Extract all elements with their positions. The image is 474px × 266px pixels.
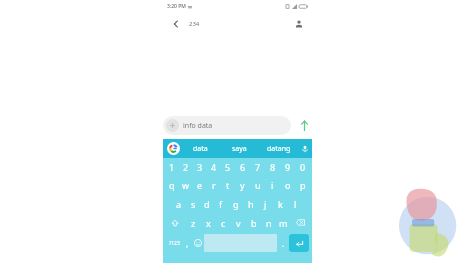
staticText: a xyxy=(176,198,182,210)
button[interactable]: l xyxy=(288,194,303,213)
button[interactable]: Add attachment xyxy=(166,119,179,132)
button[interactable]: . xyxy=(277,234,289,252)
button[interactable]: ?123 xyxy=(166,234,182,252)
button[interactable]: 7 xyxy=(250,159,265,175)
staticText: 3 xyxy=(197,161,203,173)
staticText: l xyxy=(294,198,297,210)
staticText: 3:20 PM xyxy=(167,3,186,10)
button[interactable]: n xyxy=(261,213,276,232)
button[interactable]: datang xyxy=(259,139,298,158)
button[interactable]: Voice input xyxy=(298,139,312,158)
button[interactable]: i xyxy=(265,175,280,194)
button[interactable]: c xyxy=(216,213,231,232)
button[interactable]: 3 xyxy=(193,159,207,175)
button[interactable]: t xyxy=(221,175,235,194)
staticText: 5 xyxy=(225,161,231,173)
staticText: j xyxy=(264,198,267,210)
staticText: g xyxy=(233,198,239,210)
staticText: ?123 xyxy=(169,240,180,247)
staticText: 2 xyxy=(183,161,189,173)
button[interactable]: Enter xyxy=(289,234,309,252)
staticText: 0 xyxy=(300,161,306,173)
button[interactable]: b xyxy=(246,213,261,232)
button[interactable]: a xyxy=(172,194,186,213)
button[interactable]: o xyxy=(280,175,295,194)
staticText: 1 xyxy=(169,161,175,173)
staticText: o xyxy=(285,179,291,191)
staticText: t xyxy=(226,179,230,191)
button[interactable]: Add attachment xyxy=(163,116,291,135)
staticText: n xyxy=(266,217,272,229)
button[interactable]: 1 xyxy=(165,159,179,175)
button[interactable]: Shift xyxy=(165,213,185,232)
staticText: k xyxy=(278,198,283,210)
staticText: r xyxy=(212,179,216,191)
button[interactable]: f xyxy=(214,194,228,213)
staticText: , xyxy=(186,238,189,249)
staticText: . xyxy=(282,238,285,249)
button[interactable]: j xyxy=(258,194,273,213)
staticText: p xyxy=(300,179,306,191)
staticText: b xyxy=(251,217,257,229)
staticText: h xyxy=(248,198,254,210)
staticText: f xyxy=(219,198,223,210)
button[interactable]: g xyxy=(228,194,243,213)
button[interactable]: d xyxy=(200,194,214,213)
button[interactable]: x xyxy=(201,213,216,232)
staticText: data xyxy=(193,144,208,154)
button[interactable]: z xyxy=(185,213,201,232)
button[interactable]: 4 xyxy=(207,159,221,175)
button[interactable]: Send xyxy=(296,117,312,133)
button[interactable]: v xyxy=(231,213,246,232)
staticText: info data xyxy=(183,121,213,131)
staticText: 6 xyxy=(240,161,246,173)
staticText: 8 xyxy=(270,161,276,173)
button[interactable]: y xyxy=(235,175,250,194)
button[interactable]: h xyxy=(243,194,258,213)
button[interactable]: 5 xyxy=(221,159,235,175)
button[interactable]: 0 xyxy=(295,159,310,175)
staticText: datang xyxy=(267,144,291,154)
staticText: i xyxy=(271,179,274,191)
button[interactable]: r xyxy=(207,175,221,194)
button[interactable]: Emoji xyxy=(192,234,204,252)
button[interactable]: Back xyxy=(169,17,183,31)
staticText: q xyxy=(169,179,175,191)
staticText: u xyxy=(255,179,261,191)
staticText: v xyxy=(236,217,241,229)
button[interactable]: u xyxy=(250,175,265,194)
button[interactable]: 2 xyxy=(179,159,193,175)
staticText: m xyxy=(279,217,288,229)
staticText: 4 xyxy=(211,161,217,173)
button[interactable]: Contact xyxy=(292,17,306,31)
button[interactable]: saya xyxy=(220,139,259,158)
button[interactable]: q xyxy=(165,175,179,194)
button[interactable]: Backspace xyxy=(291,213,310,232)
button[interactable]: 8 xyxy=(265,159,280,175)
staticText: z xyxy=(191,217,196,229)
button[interactable]: data xyxy=(180,139,220,158)
staticText: x xyxy=(206,217,211,229)
button[interactable]: e xyxy=(193,175,207,194)
button[interactable]: m xyxy=(276,213,291,232)
button[interactable]: Google xyxy=(167,142,180,155)
staticText: saya xyxy=(232,144,247,154)
staticText: y xyxy=(240,179,245,191)
staticText: 9 xyxy=(285,161,291,173)
button[interactable]: k xyxy=(273,194,288,213)
button[interactable]: 6 xyxy=(235,159,250,175)
button[interactable]: s xyxy=(186,194,200,213)
staticText: w xyxy=(182,179,190,191)
button[interactable]: 9 xyxy=(280,159,295,175)
staticText: c xyxy=(221,217,226,229)
button[interactable]: p xyxy=(295,175,310,194)
staticText: e xyxy=(197,179,203,191)
staticText: 7 xyxy=(255,161,261,173)
staticText: 234 xyxy=(189,20,200,28)
button[interactable]: , xyxy=(182,234,192,252)
staticText: d xyxy=(204,198,210,210)
staticText: s xyxy=(191,198,196,210)
button[interactable]: w xyxy=(179,175,193,194)
